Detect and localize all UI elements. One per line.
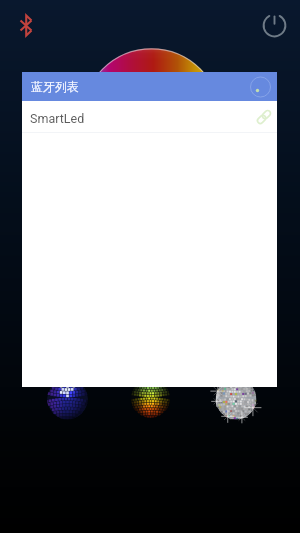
button[interactable]: 蓝牙列表 bbox=[22, 72, 277, 101]
button[interactable]: Bluetooth bbox=[16, 12, 36, 39]
button[interactable]: Power bbox=[262, 13, 287, 38]
button[interactable]: SmartLed bbox=[22, 101, 277, 132]
staticText: 蓝牙列表 bbox=[31, 79, 79, 94]
button[interactable]: Scan bbox=[249, 76, 271, 98]
staticText: SmartLed bbox=[30, 111, 85, 126]
